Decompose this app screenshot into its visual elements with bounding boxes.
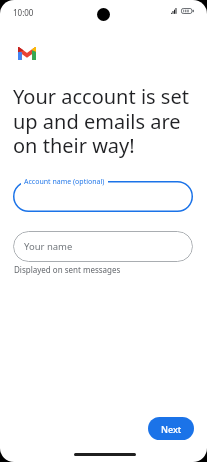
button[interactable]: Next <box>148 417 194 440</box>
staticText: Your name <box>24 240 73 253</box>
other: Home <box>74 453 136 456</box>
staticText: Account name (optional) <box>24 177 105 187</box>
staticText: Displayed on sent messages <box>14 264 121 275</box>
staticText: Next <box>161 423 182 435</box>
staticText: 10:00 <box>13 7 34 18</box>
staticText: Your account is set up and emails are on… <box>13 83 194 159</box>
button[interactable] <box>13 181 193 212</box>
button[interactable]: Your name <box>13 231 193 262</box>
